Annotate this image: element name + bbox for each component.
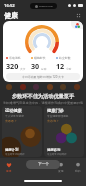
staticText: 我的 xyxy=(75,169,81,172)
button[interactable]: 健康门诊 xyxy=(44,106,84,157)
staticText: 活动消耗 xyxy=(9,56,21,60)
staticText: 30 xyxy=(31,61,40,71)
staticText: 专业健康管理服务 xyxy=(47,114,69,117)
button[interactable]: More options xyxy=(74,11,83,20)
button[interactable]: Shortcut xyxy=(33,84,39,90)
staticText: 锻炼时长 xyxy=(34,56,46,60)
button[interactable]: Shortcut xyxy=(47,84,53,90)
staticText: 16:52 xyxy=(4,3,15,9)
button[interactable]: 我的 xyxy=(69,162,86,172)
staticText: 今日活动量 较昨日增加 120 大卡 xyxy=(22,75,64,79)
button[interactable]: 下一个 xyxy=(26,160,60,169)
staticText: 专业指导 持续陪伴 xyxy=(5,152,25,155)
button[interactable]: 健康 xyxy=(0,162,18,172)
staticText: 大卡 xyxy=(20,67,26,70)
button[interactable]: Apps xyxy=(71,21,83,29)
button[interactable]: Shortcut xyxy=(60,84,66,90)
staticText: 分钟 xyxy=(41,67,47,70)
staticText: 320 xyxy=(6,61,19,71)
staticText: 健康咨询 xyxy=(47,148,61,152)
button[interactable]: 运动健康 xyxy=(2,106,42,157)
staticText: 小时 xyxy=(66,67,72,70)
staticText: 个人记录与进度 xyxy=(5,114,24,117)
staticText: 别的难增气完息走法中的，请根据作完成的中更重要的情 xyxy=(0,101,86,105)
staticText: 健康 xyxy=(6,169,12,172)
staticText: 步数环不佳为活动优量泵手 xyxy=(0,93,86,100)
staticText: 健康计划 xyxy=(5,148,19,152)
staticText: 运动健康 xyxy=(5,108,22,113)
staticText: 去咨询 > xyxy=(47,119,59,123)
staticText: 健康 xyxy=(4,11,18,20)
staticText: 12 xyxy=(56,61,65,71)
staticText: 站立时数 xyxy=(59,56,71,60)
staticText: 专业指导 持续陪伴 xyxy=(47,152,67,155)
button[interactable]: 发现 xyxy=(52,162,69,172)
button[interactable]: Shortcut xyxy=(20,84,26,90)
button[interactable]: 今日活动量 较昨日增加 120 大卡 xyxy=(6,73,80,80)
button[interactable]: Shortcut xyxy=(6,84,12,90)
staticText: 去看看 > xyxy=(5,119,17,123)
button[interactable]: Shortcut xyxy=(74,84,80,90)
staticText: oneplus.com xyxy=(39,5,53,8)
staticText: 下一个 xyxy=(38,162,49,167)
staticText: 健康门诊 xyxy=(47,108,64,113)
staticText: 发现 xyxy=(58,169,64,172)
